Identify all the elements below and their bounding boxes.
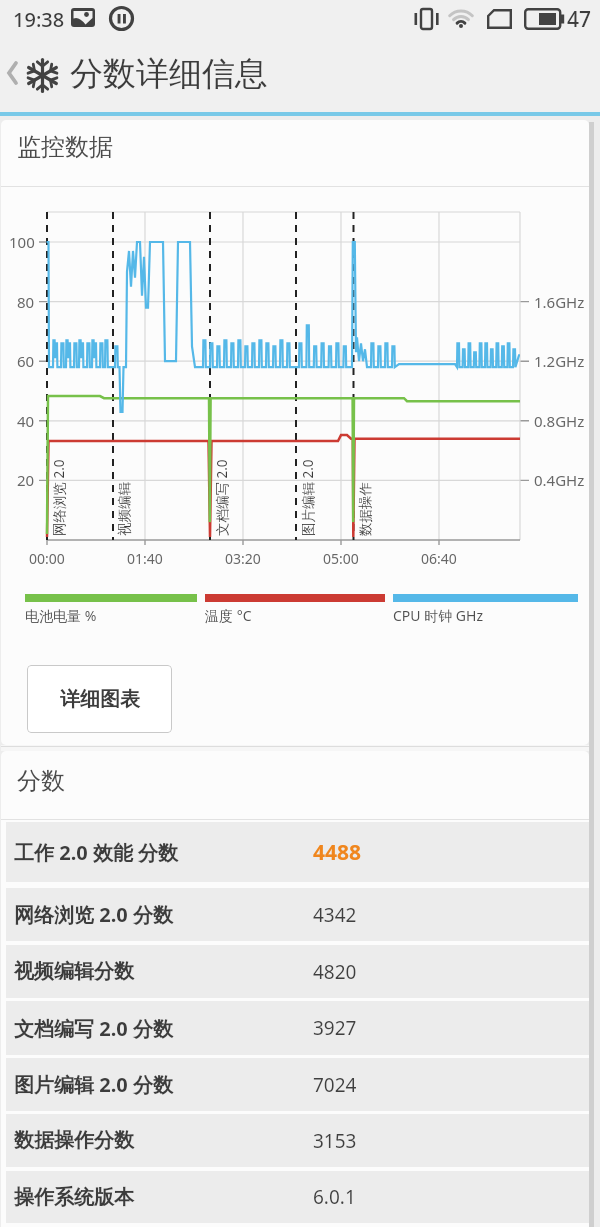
button[interactable]: 操作系统版本 <box>6 1171 589 1223</box>
staticText: 分数详细信息 <box>70 53 268 95</box>
button[interactable]: 图片编辑 2.0 分数 <box>6 1058 589 1111</box>
button[interactable]: 数据操作分数 <box>6 1114 589 1167</box>
button[interactable]: 文档编写 2.0 分数 <box>6 1001 589 1055</box>
staticText: 图片编辑 2.0 分数 <box>14 1071 173 1098</box>
staticText: 47 <box>567 5 592 34</box>
staticText: 3927 <box>313 1015 357 1041</box>
staticText: 4342 <box>313 902 357 928</box>
staticText: 6.0.1 <box>313 1184 356 1210</box>
staticText: 工作 2.0 效能 分数 <box>14 839 179 866</box>
staticText: 数据操作分数 <box>14 1128 134 1153</box>
staticText: 视频编辑分数 <box>14 959 134 984</box>
button[interactable] <box>7 61 18 85</box>
staticText: 分数 <box>17 766 65 796</box>
button[interactable]: 视频编辑分数 <box>6 945 589 998</box>
staticText: 网络浏览 2.0 分数 <box>14 901 173 928</box>
staticText: 4488 <box>313 838 362 867</box>
button[interactable]: 工作 2.0 效能 分数 <box>6 822 589 882</box>
button[interactable]: 网络浏览 2.0 分数 <box>6 888 589 941</box>
staticText: 监控数据 <box>17 132 113 162</box>
staticText: 文档编写 2.0 分数 <box>14 1015 173 1042</box>
button[interactable]: 详细图表 <box>27 665 172 733</box>
staticText: 19:38 <box>13 6 65 33</box>
staticText: 操作系统版本 <box>14 1185 134 1210</box>
staticText: 7024 <box>313 1072 357 1098</box>
staticText: 3153 <box>313 1128 357 1154</box>
staticText: 详细图表 <box>60 687 140 712</box>
staticText: 4820 <box>313 959 357 985</box>
